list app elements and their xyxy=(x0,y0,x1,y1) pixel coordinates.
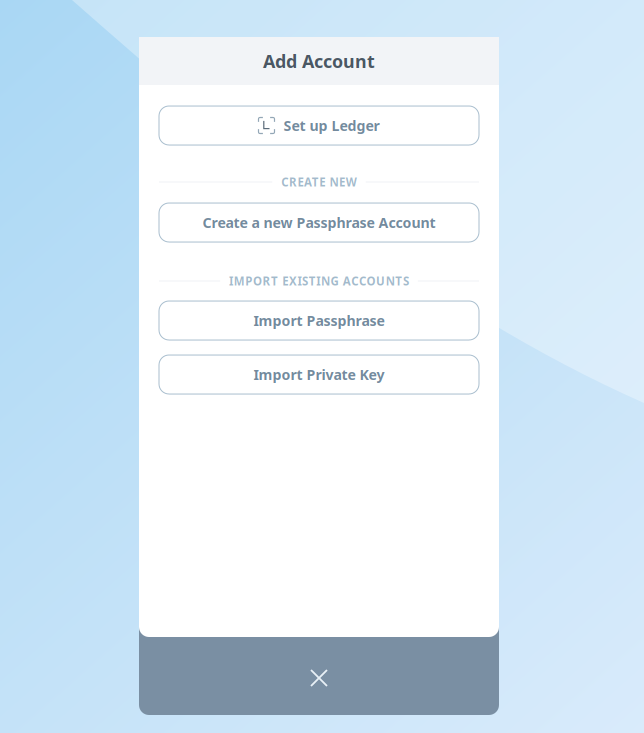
staticText: IMPORT EXISTING ACCOUNTS xyxy=(229,273,409,289)
staticText: Import Private Key xyxy=(253,365,384,384)
staticText: Set up Ledger xyxy=(283,116,379,135)
staticText: Import Passphrase xyxy=(253,311,384,330)
button[interactable]: Set up Ledger xyxy=(159,106,479,145)
button[interactable]: Close xyxy=(139,37,499,715)
staticText: CREATE NEW xyxy=(281,174,357,190)
button[interactable]: Import Private Key xyxy=(159,355,479,394)
staticText: Add Account xyxy=(263,49,375,73)
staticText: Create a new Passphrase Account xyxy=(202,213,435,232)
button[interactable]: Create a new Passphrase Account xyxy=(159,203,479,242)
button[interactable]: Import Passphrase xyxy=(159,301,479,340)
